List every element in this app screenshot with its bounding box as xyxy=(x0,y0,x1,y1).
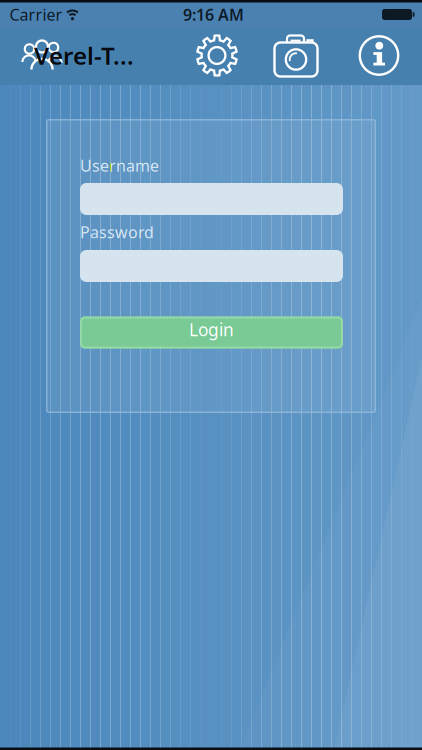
staticText: Verel-T... xyxy=(34,40,134,71)
button[interactable]: Username xyxy=(80,183,343,215)
button[interactable]: Camera xyxy=(274,34,320,78)
button[interactable]: Contacts xyxy=(20,37,64,71)
staticText: Username xyxy=(80,155,159,176)
button[interactable]: Info xyxy=(358,34,400,76)
button[interactable]: Settings xyxy=(195,33,239,77)
staticText: Password xyxy=(80,221,154,243)
staticText: 9:16 AM xyxy=(183,4,244,25)
staticText: Carrier xyxy=(9,4,62,25)
button[interactable]: Password xyxy=(80,250,343,282)
staticText: Login xyxy=(189,318,234,341)
button[interactable]: Login xyxy=(80,316,343,348)
